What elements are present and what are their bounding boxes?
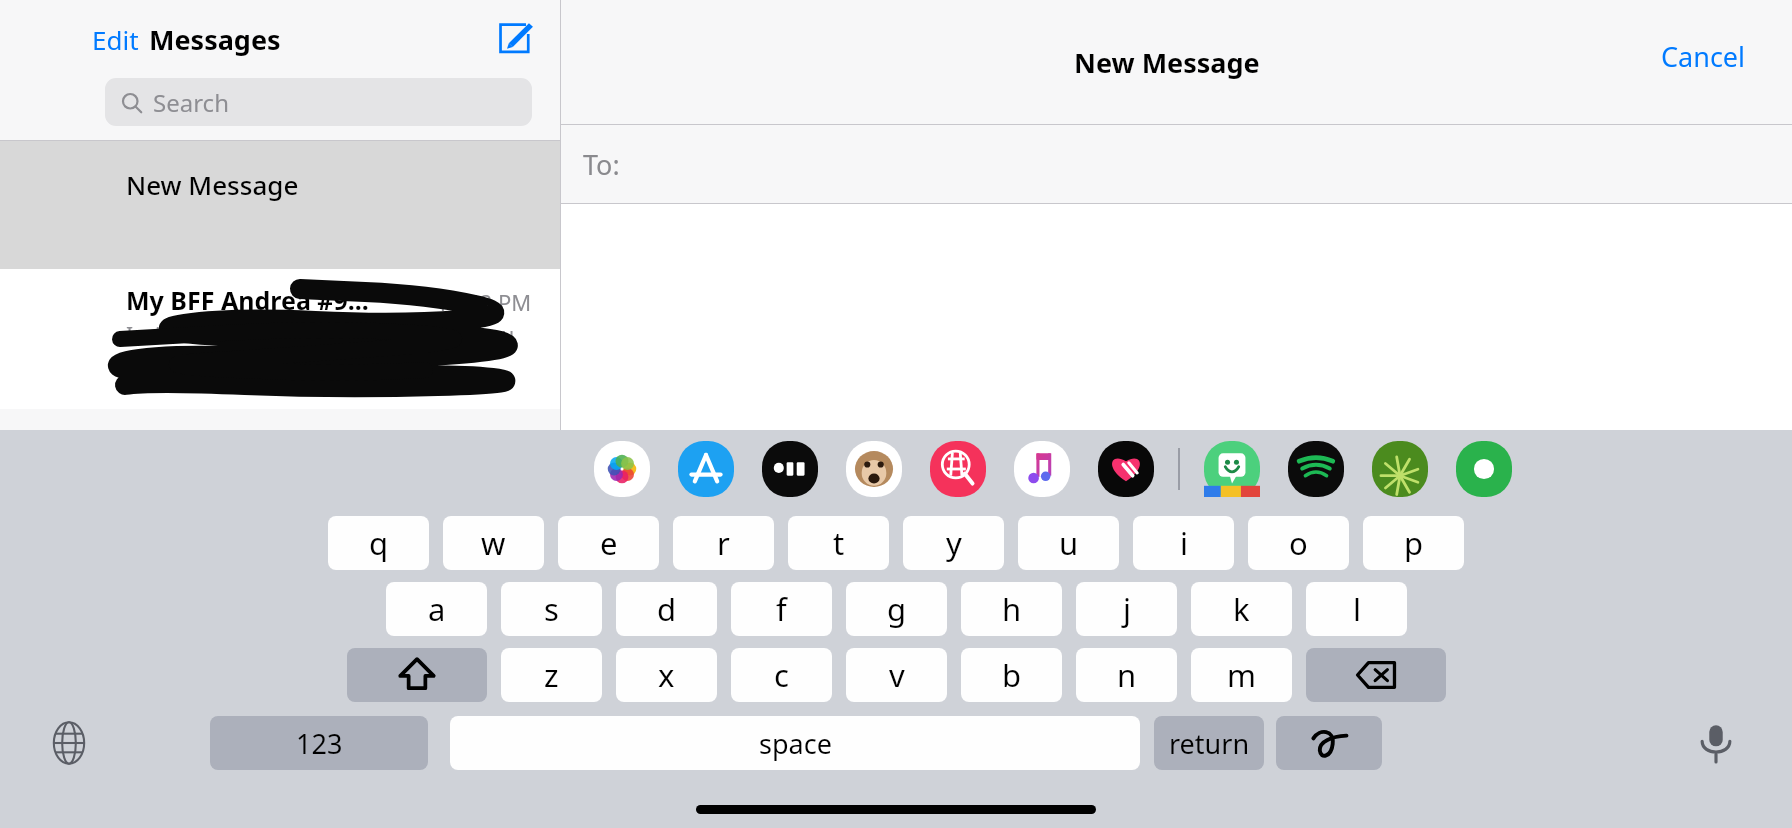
button[interactable]: App [1372, 441, 1428, 497]
button[interactable]: Switch keyboard [40, 714, 98, 772]
button[interactable]: k [1191, 582, 1292, 636]
staticText: 123 [296, 725, 343, 762]
staticText: c [774, 654, 789, 696]
button[interactable]: q [328, 516, 429, 570]
button[interactable]: Cancel [1655, 34, 1752, 79]
button[interactable]: My BFF Andrea #9... [0, 269, 560, 409]
button[interactable]: x [616, 648, 717, 702]
staticText: r [717, 522, 730, 564]
button[interactable]: space [450, 716, 1140, 770]
button[interactable]: Compose new message [494, 17, 538, 61]
button[interactable]: App [1204, 441, 1260, 497]
staticText: g [887, 588, 907, 630]
button[interactable]: App [762, 441, 818, 497]
button[interactable]: App [594, 441, 650, 497]
button[interactable]: App Store [673, 759, 723, 809]
button[interactable]: v [846, 648, 947, 702]
button[interactable]: o [1248, 516, 1349, 570]
button[interactable]: App [1098, 441, 1154, 497]
button[interactable]: n [1076, 648, 1177, 702]
button[interactable]: g [846, 582, 947, 636]
staticText: f [776, 588, 787, 630]
staticText: k [1233, 588, 1250, 630]
button[interactable]: s [501, 582, 602, 636]
button[interactable]: d [616, 582, 717, 636]
button[interactable]: Shift [347, 648, 487, 702]
button[interactable]: m [1191, 648, 1292, 702]
button[interactable]: return [1154, 716, 1264, 770]
button[interactable]: i [1133, 516, 1234, 570]
button[interactable]: App [846, 441, 902, 497]
staticText: h [1002, 588, 1022, 630]
button[interactable]: Send [753, 756, 1770, 812]
staticText: 10:42 PM [436, 287, 532, 317]
staticText: t [833, 522, 845, 564]
button[interactable]: App [678, 441, 734, 497]
button[interactable]: New Message [0, 141, 560, 269]
staticText: To: [583, 146, 620, 183]
button[interactable]: Camera [591, 757, 645, 811]
button[interactable]: h [961, 582, 1062, 636]
staticText: return [1169, 725, 1250, 762]
button[interactable]: To: [561, 125, 1792, 203]
button[interactable]: j [1076, 582, 1177, 636]
button[interactable]: App [930, 441, 986, 497]
staticText: Edit [92, 22, 139, 57]
button[interactable]: b [961, 648, 1062, 702]
staticText: u [1059, 522, 1079, 564]
staticText: a [428, 588, 446, 630]
staticText: s [544, 588, 559, 630]
staticText: v [889, 654, 905, 696]
staticText: q [369, 522, 389, 564]
button[interactable]: Search [105, 78, 532, 126]
staticText: Cancel [1661, 38, 1746, 75]
button[interactable]: w [443, 516, 544, 570]
staticText: n [1117, 654, 1137, 696]
button[interactable]: z [501, 648, 602, 702]
staticText: l [1353, 588, 1361, 630]
button[interactable]: y [903, 516, 1004, 570]
staticText: z [544, 654, 559, 696]
staticText: d [657, 588, 677, 630]
button[interactable]: f [731, 582, 832, 636]
button[interactable]: l [1306, 582, 1407, 636]
button[interactable]: App [1288, 441, 1344, 497]
staticText: b [1002, 654, 1022, 696]
staticText: New Message [1074, 44, 1260, 81]
button[interactable]: Delete [1306, 648, 1446, 702]
button[interactable]: e [558, 516, 659, 570]
button[interactable]: App [1456, 441, 1512, 497]
staticText: i [1180, 522, 1188, 564]
button[interactable]: App [1014, 441, 1070, 497]
staticText: I will share a #2 second clue when you g… [126, 321, 515, 379]
button[interactable]: 123 [210, 716, 428, 770]
button[interactable]: p [1363, 516, 1464, 570]
staticText: p [1404, 522, 1424, 564]
button[interactable]: r [673, 516, 774, 570]
staticText: e [600, 522, 618, 564]
staticText: y [946, 522, 962, 564]
staticText: My BFF Andrea #9... [126, 283, 369, 317]
staticText: Search [153, 86, 229, 119]
button[interactable]: c [731, 648, 832, 702]
button[interactable]: a [386, 582, 487, 636]
staticText: space [759, 725, 832, 762]
staticText: New Message [126, 167, 299, 202]
button[interactable]: t [788, 516, 889, 570]
button[interactable]: Dictation [1688, 715, 1744, 771]
staticText: Messages [149, 21, 281, 58]
staticText: m [1227, 654, 1256, 696]
staticText: w [481, 522, 506, 564]
staticText: o [1289, 522, 1308, 564]
button[interactable]: Edit [86, 18, 145, 61]
staticText: x [658, 654, 675, 696]
button[interactable]: Dismiss keyboard [1276, 716, 1382, 770]
staticText: j [1123, 588, 1131, 630]
button[interactable]: u [1018, 516, 1119, 570]
